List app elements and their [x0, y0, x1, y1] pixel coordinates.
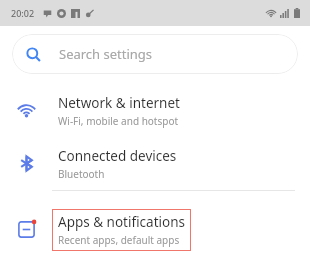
staticText: Connected devices	[58, 147, 177, 165]
other: Connected devices	[17, 154, 36, 173]
button[interactable]: Network and internet	[0, 84, 310, 137]
other: Network and internet	[17, 101, 36, 120]
staticText: Network & internet	[58, 94, 180, 112]
button[interactable]: Connected devices	[0, 137, 310, 190]
other: Apps and notifications	[17, 220, 36, 239]
staticText: 20:02	[11, 7, 35, 19]
staticText: Recent apps, default apps	[58, 233, 180, 247]
staticText: Apps & notifications	[58, 213, 185, 231]
staticText: Search settings	[59, 45, 153, 63]
button[interactable]: Search settings	[12, 34, 298, 74]
button[interactable]: Apps and notifications	[0, 203, 310, 256]
staticText: Bluetooth	[58, 167, 105, 181]
staticText: Wi-Fi, mobile and hotspot	[58, 114, 179, 128]
